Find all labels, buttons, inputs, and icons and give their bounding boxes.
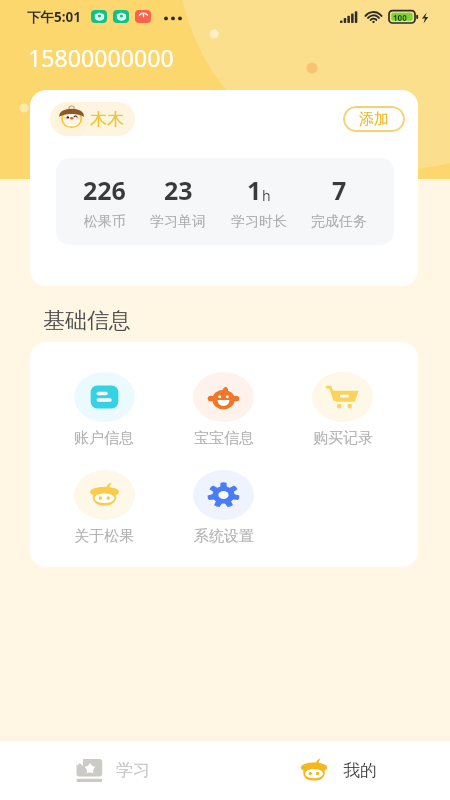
button[interactable]: 我的 — [225, 758, 450, 783]
staticText: 木木 — [90, 109, 124, 130]
button[interactable]: 木木 — [50, 102, 135, 136]
staticText: 100 — [393, 12, 407, 23]
button[interactable]: 宝宝信息 — [164, 372, 283, 448]
staticText: 23 — [164, 173, 193, 207]
staticText: 我的 — [343, 760, 377, 781]
button[interactable]: 关于松果 — [44, 470, 164, 546]
staticText: 添加 — [359, 110, 389, 129]
staticText: 学习 — [116, 760, 150, 781]
staticText: 松果币 — [84, 213, 126, 231]
staticText: 账户信息 — [74, 429, 134, 448]
staticText: 宝宝信息 — [194, 429, 254, 448]
staticText: h — [262, 186, 271, 205]
button[interactable]: 添加 — [343, 106, 405, 132]
staticText: 购买记录 — [313, 429, 373, 448]
staticText: 关于松果 — [74, 527, 134, 546]
staticText: 15800000000 — [28, 42, 174, 73]
staticText: 学习单词 — [150, 213, 206, 231]
staticText: 7 — [332, 173, 347, 207]
staticText: 226 — [83, 173, 126, 207]
staticText: 1 — [247, 173, 262, 207]
staticText: 基础信息 — [43, 307, 131, 335]
button[interactable]: 系统设置 — [164, 470, 283, 546]
staticText: 完成任务 — [311, 213, 367, 231]
staticText: 下午5:01 — [27, 8, 81, 26]
button[interactable]: 学习 — [0, 759, 225, 782]
staticText: 学习时长 — [231, 213, 287, 231]
staticText: 系统设置 — [194, 527, 254, 546]
button[interactable]: 购买记录 — [283, 372, 402, 448]
button[interactable]: 账户信息 — [44, 372, 164, 448]
